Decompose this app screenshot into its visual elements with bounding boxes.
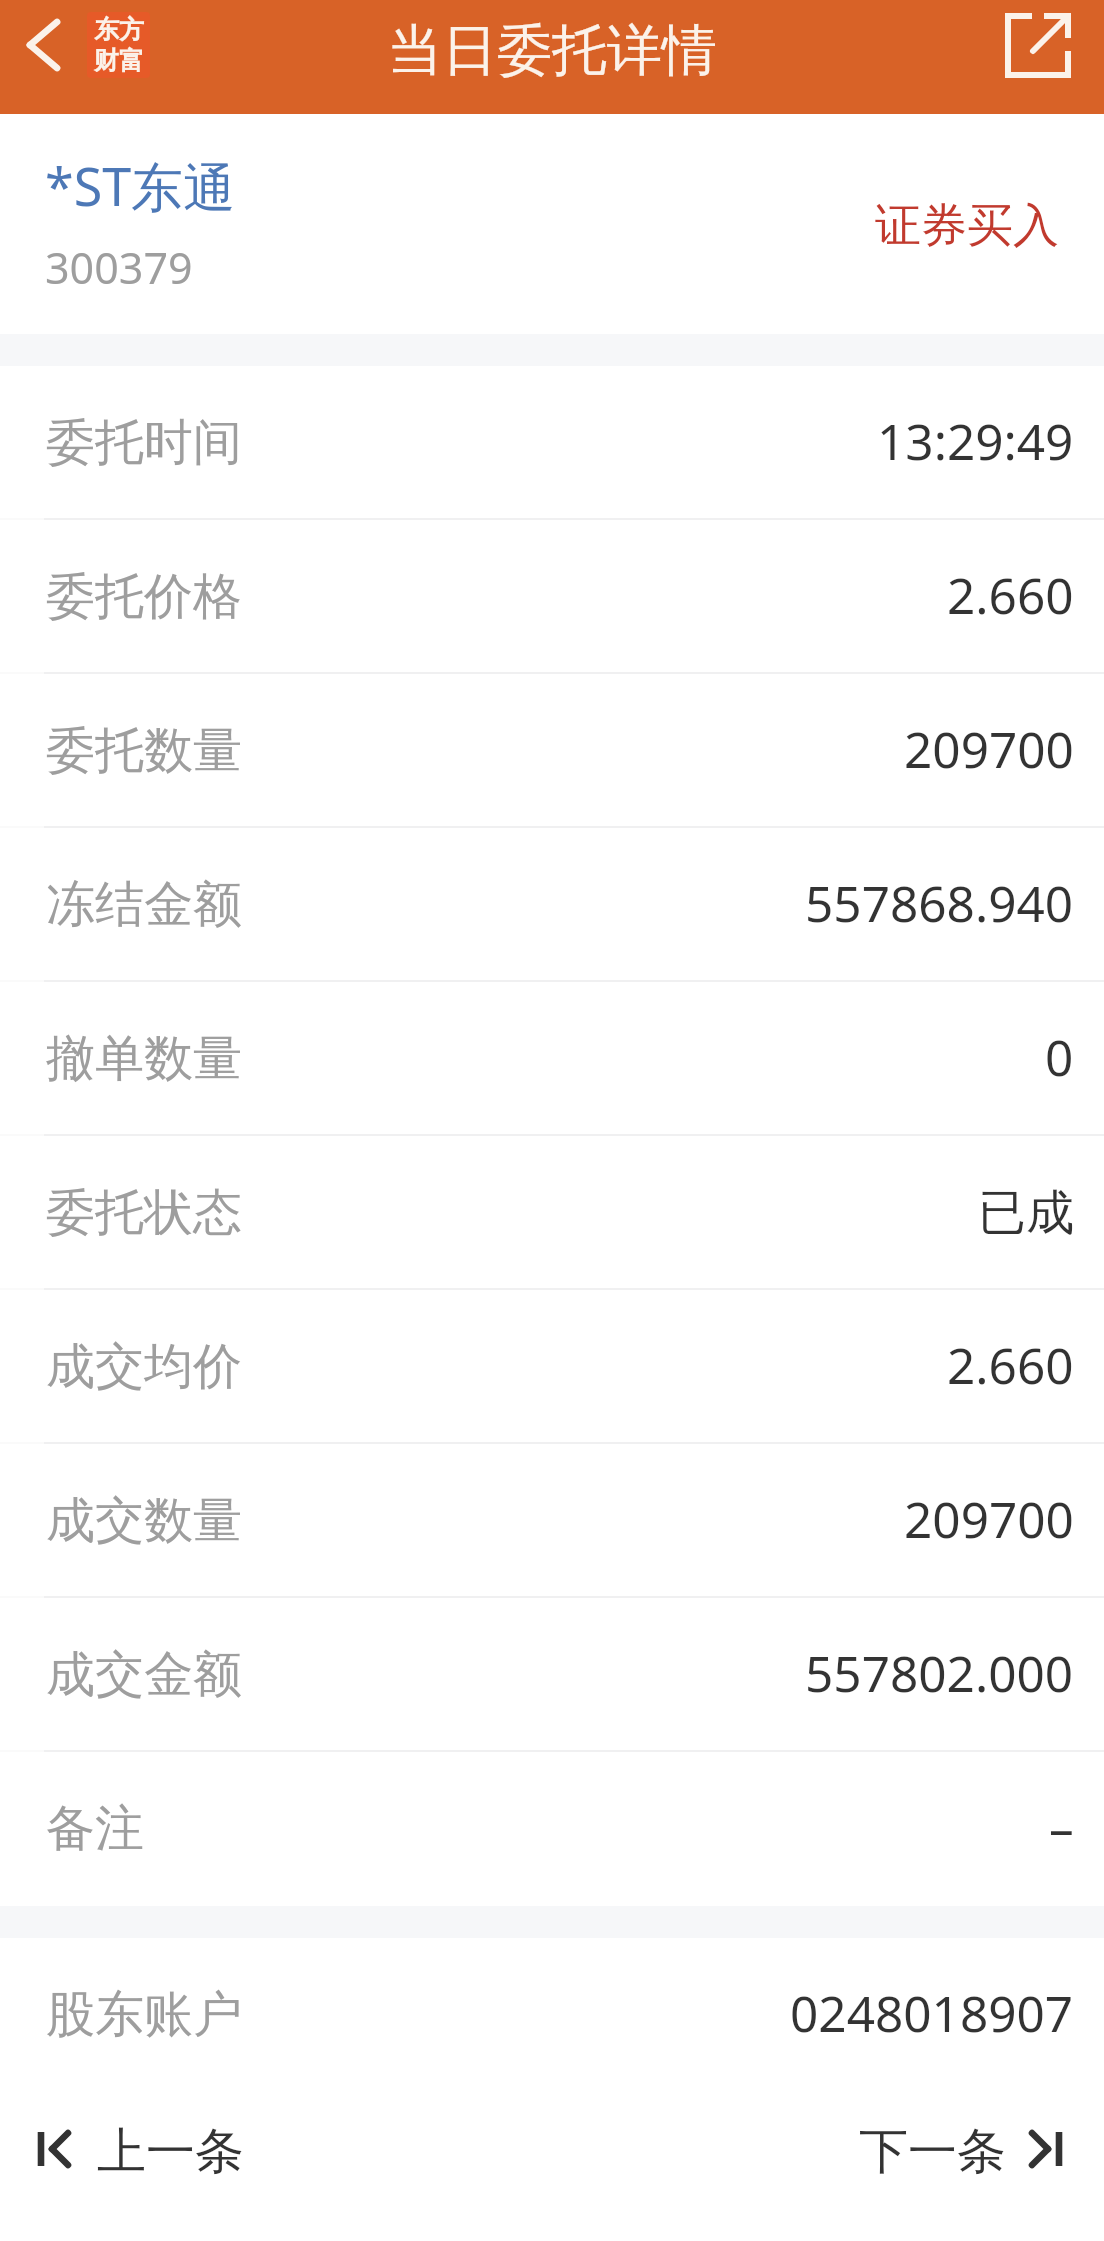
staticText: 下一条 — [859, 2121, 1006, 2183]
button[interactable]: *ST东通 — [45, 150, 236, 297]
staticText: 当日委托详情 — [387, 16, 717, 85]
staticText: 委托时间 — [46, 412, 242, 474]
button[interactable]: 下一条 — [835, 2121, 1104, 2183]
staticText: 0248018907 — [790, 1979, 1074, 2046]
staticText: 备注 — [46, 1798, 144, 1860]
button[interactable]: Share — [988, 0, 1088, 91]
staticText: 557802.000 — [805, 1639, 1074, 1706]
staticText: 已成 — [978, 1183, 1074, 1243]
staticText: 撤单数量 — [46, 1028, 242, 1090]
staticText: – — [1049, 1793, 1074, 1860]
staticText: 209700 — [904, 1485, 1074, 1552]
staticText: 300379 — [45, 238, 193, 297]
staticText: 委托状态 — [46, 1182, 242, 1244]
staticText: 东方 — [94, 14, 144, 45]
staticText: 成交均价 — [46, 1336, 242, 1398]
staticText: 0 — [1045, 1023, 1074, 1090]
staticText: 委托价格 — [46, 566, 242, 628]
staticText: 2.660 — [947, 561, 1074, 628]
staticText: *ST东通 — [45, 150, 236, 221]
button[interactable]: 上一条 — [0, 2121, 268, 2183]
staticText: 557868.940 — [805, 869, 1074, 936]
staticText: 2.660 — [947, 1331, 1074, 1398]
staticText: 13:29:49 — [877, 407, 1074, 474]
staticText: 成交金额 — [46, 1644, 242, 1706]
staticText: 成交数量 — [46, 1490, 242, 1552]
staticText: 上一条 — [97, 2121, 244, 2183]
staticText: 股东账户 — [46, 1984, 242, 2046]
staticText: 财富 — [94, 45, 144, 76]
button[interactable]: Back — [0, 0, 86, 91]
staticText: 209700 — [904, 715, 1074, 782]
staticText: 证券买入 — [875, 197, 1059, 255]
staticText: 冻结金额 — [46, 874, 242, 936]
staticText: 委托数量 — [46, 720, 242, 782]
